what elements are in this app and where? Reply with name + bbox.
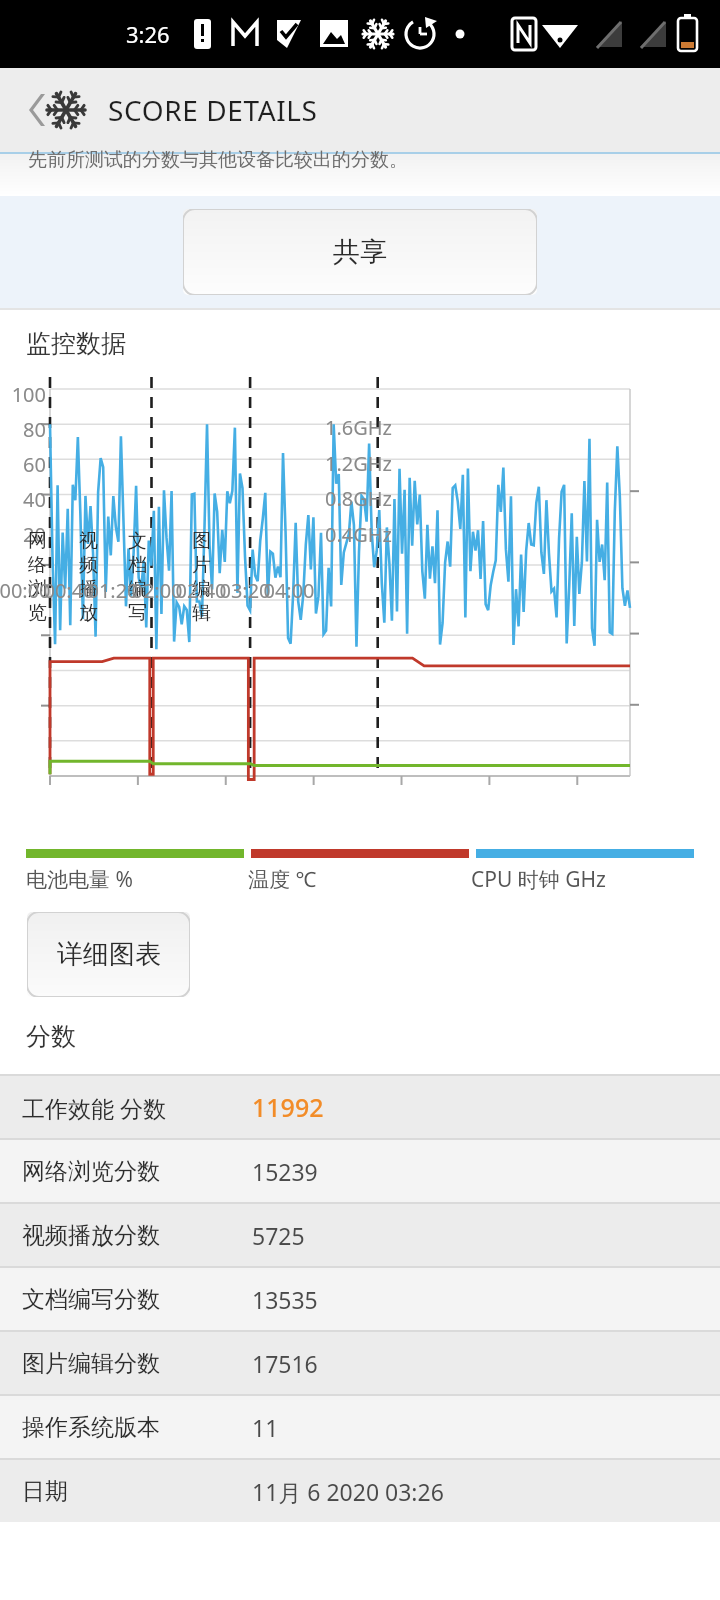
button[interactable]: 操作系统版本 bbox=[0, 1396, 720, 1458]
button[interactable]: 共享 bbox=[183, 209, 537, 295]
staticText: 图片编辑分数 bbox=[22, 1349, 252, 1378]
staticText: 0.4GHz bbox=[325, 521, 393, 548]
staticText: 网络浏览分数 bbox=[22, 1157, 252, 1186]
staticText: 02:40 bbox=[175, 577, 227, 604]
staticText: 15239 bbox=[252, 1156, 318, 1187]
staticText: 温度 ℃ bbox=[248, 865, 471, 894]
staticText: 04:00 bbox=[263, 577, 315, 604]
staticText: 工作效能 分数 bbox=[22, 1092, 252, 1123]
staticText: 频 bbox=[79, 553, 98, 577]
staticText: CPU 时钟 GHz bbox=[471, 865, 694, 894]
staticText: 档 bbox=[128, 553, 147, 577]
staticText: 11992 bbox=[252, 1090, 324, 1124]
staticText: 13535 bbox=[252, 1284, 318, 1315]
button[interactable]: 工作效能 分数 bbox=[0, 1076, 720, 1138]
staticText: 60 bbox=[4, 451, 46, 478]
staticText: 00:40 bbox=[43, 577, 95, 604]
staticText: 0.8GHz bbox=[325, 485, 393, 512]
staticText: 辑 bbox=[192, 601, 211, 625]
staticText: 视频播放分数 bbox=[22, 1221, 252, 1250]
staticText: 文 bbox=[128, 529, 147, 553]
staticText: 20 bbox=[4, 521, 46, 548]
staticText: 播 bbox=[79, 577, 98, 601]
staticText: 5725 bbox=[252, 1220, 305, 1251]
staticText: 览 bbox=[28, 601, 47, 625]
staticText: 日期 bbox=[22, 1477, 252, 1506]
staticText: 11月 6 2020 03:26 bbox=[252, 1476, 444, 1507]
staticText: 片 bbox=[192, 553, 211, 577]
staticText: 文档编写分数 bbox=[22, 1285, 252, 1314]
staticText: SCORE DETAILS bbox=[108, 91, 318, 129]
button[interactable]: 图片编辑分数 bbox=[0, 1332, 720, 1394]
staticText: 40 bbox=[4, 486, 46, 513]
staticText: 详细图表 bbox=[57, 938, 161, 971]
staticText: 分数 bbox=[26, 1021, 76, 1052]
staticText: 图 bbox=[192, 529, 211, 553]
staticText: 写 bbox=[128, 601, 147, 625]
staticText: 操作系统版本 bbox=[22, 1413, 252, 1442]
staticText: 电池电量 % bbox=[26, 865, 248, 894]
button[interactable]: Back bbox=[8, 78, 72, 142]
button[interactable]: 日期 bbox=[0, 1460, 720, 1522]
staticText: 编 bbox=[192, 577, 211, 601]
staticText: 放 bbox=[79, 601, 98, 625]
staticText: 共享 bbox=[333, 235, 387, 269]
button[interactable]: 视频播放分数 bbox=[0, 1204, 720, 1266]
staticText: 网 bbox=[28, 529, 47, 553]
staticText: 浏 bbox=[28, 577, 47, 601]
staticText: 80 bbox=[4, 416, 46, 443]
button[interactable]: 网络浏览分数 bbox=[0, 1140, 720, 1202]
staticText: 00:00 bbox=[0, 577, 51, 604]
button[interactable]: 详细图表 bbox=[27, 912, 190, 997]
staticText: 络 bbox=[28, 553, 47, 577]
staticText: 监控数据 bbox=[26, 328, 126, 359]
staticText: 01:20 bbox=[87, 577, 139, 604]
staticText: 02:00 bbox=[131, 577, 183, 604]
staticText: 100 bbox=[4, 381, 46, 408]
staticText: 03:20 bbox=[219, 577, 271, 604]
staticText: 3:26 bbox=[126, 19, 170, 49]
staticText: 1.2GHz bbox=[325, 450, 393, 477]
staticText: 先前所测试的分数与其他设备比较出的分数。 bbox=[28, 148, 408, 172]
staticText: 视 bbox=[79, 529, 98, 553]
button[interactable]: 文档编写分数 bbox=[0, 1268, 720, 1330]
staticText: 11 bbox=[252, 1412, 279, 1443]
staticText: 1.6GHz bbox=[325, 414, 393, 441]
staticText: 编 bbox=[128, 577, 147, 601]
staticText: 17516 bbox=[252, 1348, 318, 1379]
